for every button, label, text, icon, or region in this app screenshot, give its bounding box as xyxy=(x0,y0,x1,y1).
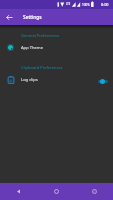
staticText: Settings xyxy=(23,14,42,21)
staticText: 100% xyxy=(82,3,90,7)
staticText: General Preferences xyxy=(21,33,60,38)
button[interactable]: Back xyxy=(1,9,17,25)
button[interactable]: Back xyxy=(0,183,37,200)
button[interactable]: Home xyxy=(37,183,75,200)
staticText: Log clips xyxy=(21,77,98,83)
staticText: App Theme xyxy=(21,45,43,51)
button[interactable]: Recents xyxy=(75,183,113,200)
staticText: 8:00 xyxy=(101,2,109,7)
button[interactable]: Log clips xyxy=(0,74,113,85)
staticText: Clipboard Preferences xyxy=(21,65,63,70)
button[interactable]: App Theme xyxy=(0,42,113,53)
staticText: LTE xyxy=(66,2,71,6)
